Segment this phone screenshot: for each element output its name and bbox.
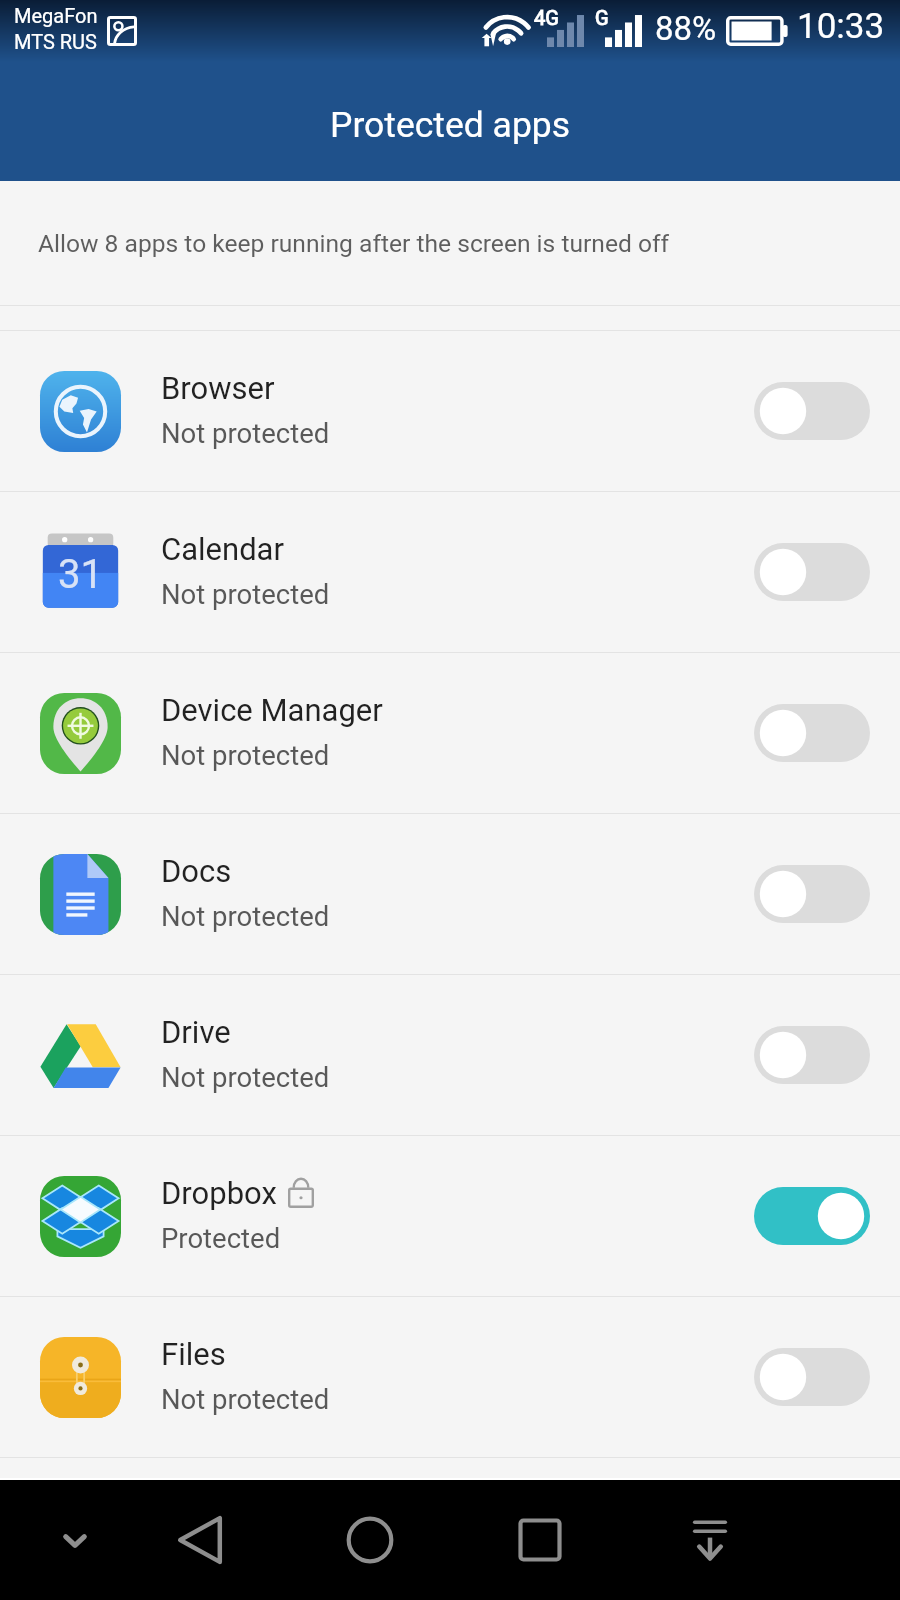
button[interactable]: Home <box>340 1480 400 1600</box>
button[interactable]: Hide keyboard <box>45 1480 105 1600</box>
staticText: Docs <box>161 853 232 889</box>
staticText: 4G <box>534 6 559 29</box>
staticText: Drive <box>161 1014 231 1050</box>
staticText: Not protected <box>161 1383 330 1415</box>
button[interactable]: Files <box>0 1297 900 1457</box>
button[interactable]: Browser <box>0 331 900 491</box>
staticText: Dropbox <box>161 1175 277 1211</box>
staticText: MegaFon <box>14 4 98 27</box>
staticText: Calendar <box>161 531 284 567</box>
staticText: Not protected <box>161 739 330 771</box>
button[interactable]: Toggle Drive <box>754 1026 870 1084</box>
staticText: Browser <box>161 370 275 406</box>
button[interactable]: 31 <box>0 492 900 652</box>
button[interactable]: Docs <box>0 814 900 974</box>
staticText: Not protected <box>161 417 330 449</box>
staticText: Not protected <box>161 1061 330 1093</box>
button[interactable]: Notifications <box>680 1480 740 1600</box>
staticText: 31 <box>58 551 103 598</box>
staticText: Not protected <box>161 578 330 610</box>
staticText: Files <box>161 1336 226 1372</box>
button[interactable]: Drive <box>0 975 900 1135</box>
staticText: 10:33 <box>797 6 885 47</box>
staticText: Device Manager <box>161 692 383 728</box>
staticText: Allow 8 apps to keep running after the s… <box>38 229 670 258</box>
button[interactable]: Toggle Docs <box>754 865 870 923</box>
button[interactable]: Dropbox <box>0 1136 900 1296</box>
button[interactable]: Recent apps <box>510 1480 570 1600</box>
staticText: Not protected <box>161 900 330 932</box>
button[interactable]: Toggle Browser <box>754 382 870 440</box>
staticText: G <box>595 6 609 29</box>
button[interactable]: Toggle Device Manager <box>754 704 870 762</box>
staticText: Protected apps <box>330 104 571 146</box>
staticText: 88% <box>655 9 717 48</box>
staticText: Protected <box>161 1222 281 1254</box>
button[interactable]: Device Manager <box>0 653 900 813</box>
button[interactable]: Back <box>170 1480 230 1600</box>
staticText: MTS RUS <box>14 30 97 53</box>
button[interactable]: Toggle Calendar <box>754 543 870 601</box>
button[interactable]: Toggle Files <box>754 1348 870 1406</box>
button[interactable]: Toggle Dropbox <box>754 1187 870 1245</box>
